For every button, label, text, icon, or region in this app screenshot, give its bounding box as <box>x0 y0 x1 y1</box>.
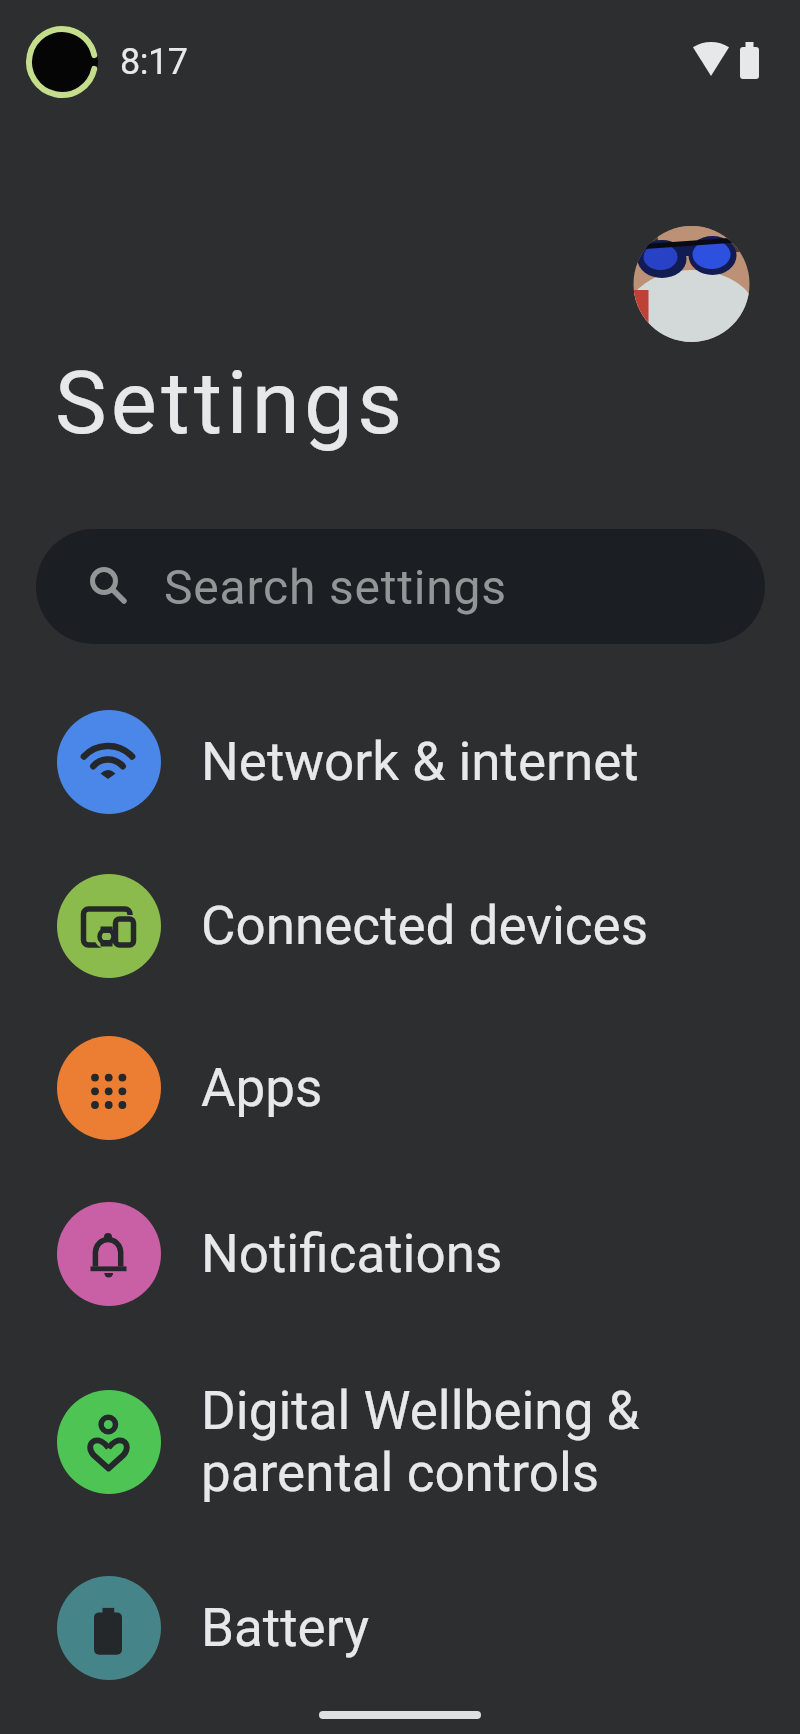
staticText: Apps <box>201 1057 323 1119</box>
button[interactable] <box>633 226 750 343</box>
staticText: Connected devices <box>201 895 649 957</box>
staticText: Network & internet <box>201 731 639 793</box>
button[interactable]: Apps <box>0 1006 800 1170</box>
staticText: Search settings <box>164 559 507 615</box>
staticText: Digital Wellbeing & parental controls <box>201 1380 640 1504</box>
staticText: 8:17 <box>120 41 188 83</box>
button[interactable]: Connected devices <box>0 844 800 1008</box>
staticText: Notifications <box>201 1223 503 1285</box>
button[interactable]: Network & internet <box>0 680 800 844</box>
button[interactable]: Search settings <box>36 529 765 644</box>
staticText: Settings <box>55 352 407 454</box>
staticText: Battery <box>201 1597 370 1659</box>
button[interactable]: Battery <box>0 1544 800 1712</box>
button[interactable]: Digital Wellbeing & parental controls <box>0 1347 800 1537</box>
button[interactable]: Notifications <box>0 1172 800 1336</box>
